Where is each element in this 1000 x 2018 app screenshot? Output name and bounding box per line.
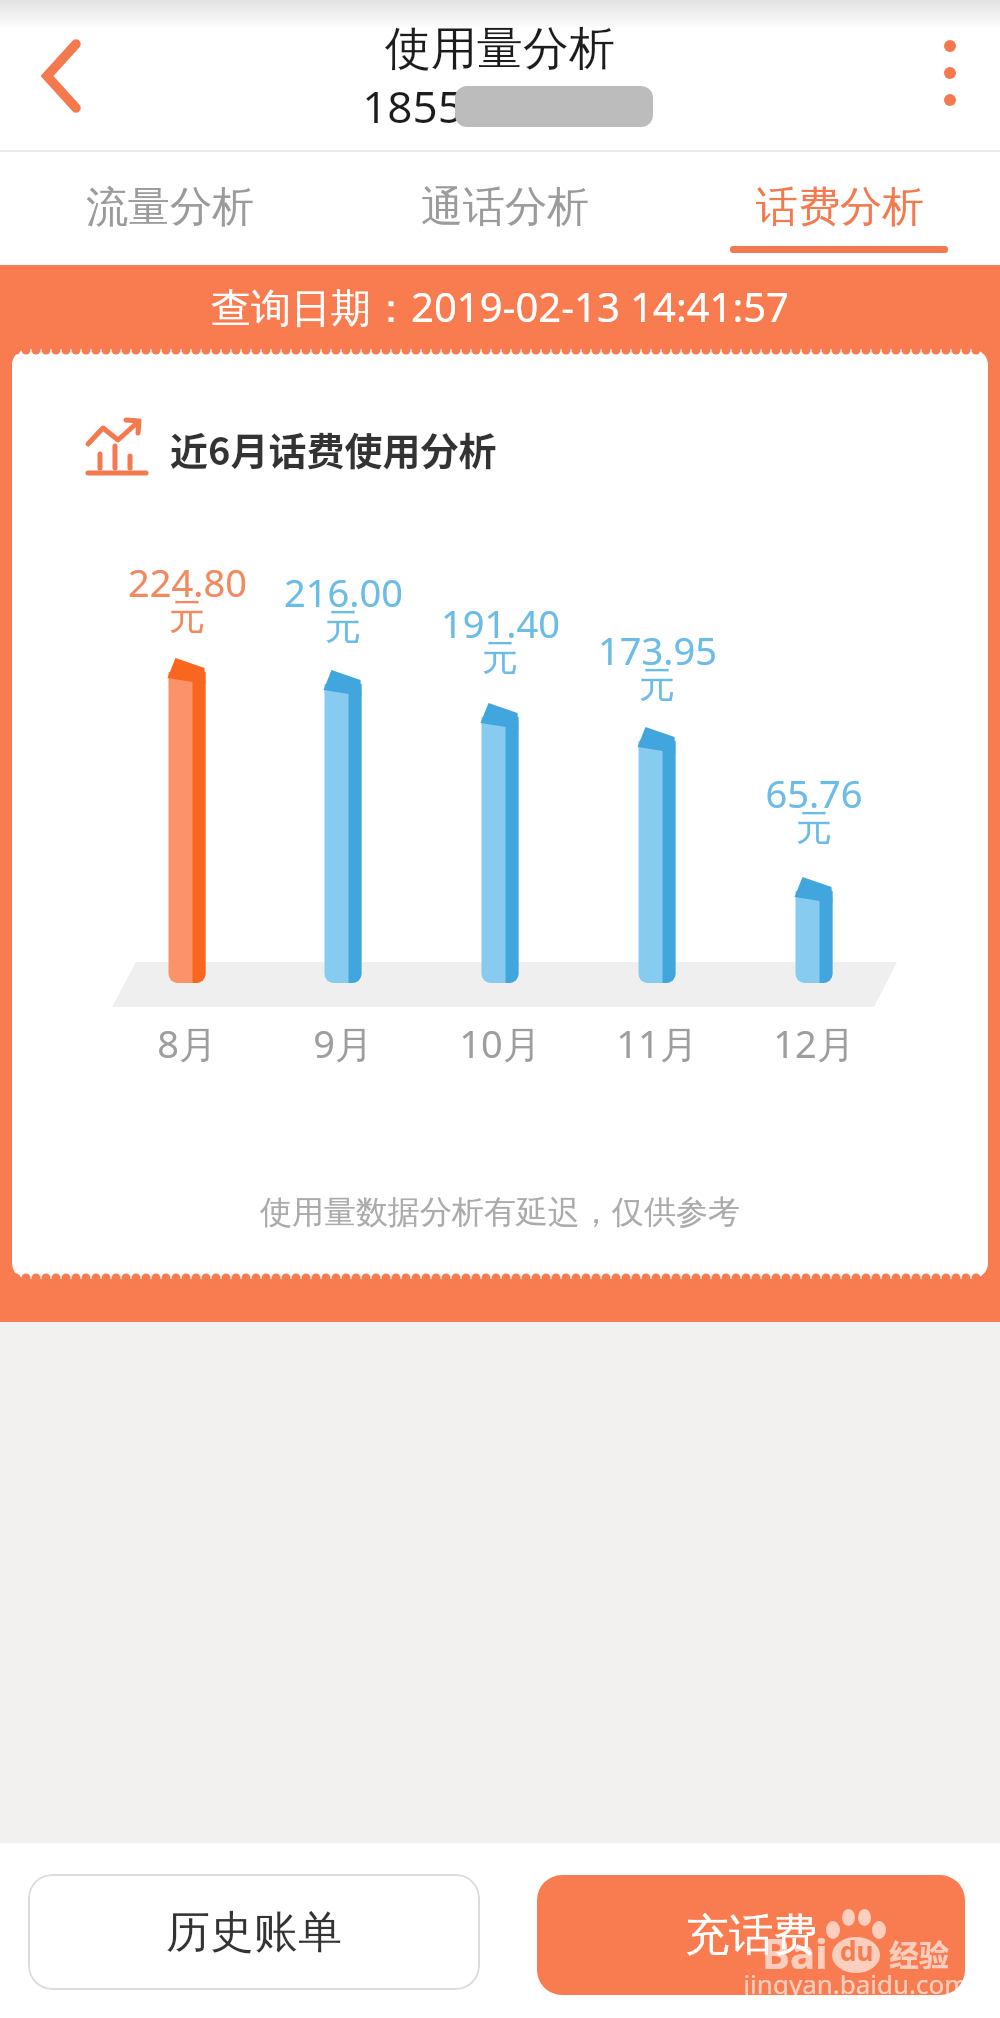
- staticText: 通话分析: [421, 181, 589, 234]
- staticText: du: [840, 1933, 874, 1968]
- staticText: 216.00: [284, 566, 403, 618]
- staticText: 12月: [773, 1017, 855, 1069]
- button[interactable]: 流量分析: [60, 160, 280, 255]
- staticText: 10月: [459, 1017, 541, 1069]
- button[interactable]: 历史账单: [28, 1874, 480, 1990]
- staticText: 11月: [616, 1017, 698, 1069]
- staticText: 8月: [157, 1017, 217, 1069]
- staticText: 历史账单: [166, 1905, 342, 1960]
- button[interactable]: 通话分析: [395, 160, 615, 255]
- staticText: 65.76: [765, 767, 863, 819]
- staticText: 近6月话费使用分析: [170, 421, 497, 476]
- staticText: 173.95: [598, 624, 717, 676]
- staticText: 1855: [362, 76, 463, 136]
- staticText: 元: [169, 594, 205, 639]
- staticText: 224.80: [128, 556, 247, 608]
- staticText: Bai: [762, 1924, 828, 1981]
- staticText: 元: [796, 805, 832, 850]
- button[interactable]: [20, 30, 110, 130]
- staticText: 流量分析: [86, 181, 254, 234]
- staticText: 查询日期：2019-02-13 14:41:57: [211, 279, 789, 334]
- staticText: 元: [639, 662, 675, 707]
- staticText: 充话费: [685, 1908, 817, 1963]
- button[interactable]: 充话费: [537, 1875, 965, 1995]
- staticText: 经验: [889, 1931, 949, 1974]
- staticText: jingyan.baidu.com: [743, 1966, 969, 2001]
- button[interactable]: [910, 30, 990, 130]
- staticText: 使用量数据分析有延迟，仅供参考: [260, 1192, 740, 1232]
- staticText: 9月: [313, 1017, 373, 1069]
- staticText: 元: [325, 604, 361, 649]
- staticText: 话费分析: [756, 181, 924, 234]
- staticText: 191.40: [441, 597, 560, 649]
- button[interactable]: 话费分析: [730, 160, 950, 255]
- staticText: 元: [482, 635, 518, 680]
- staticText: 使用量分析: [385, 20, 615, 78]
